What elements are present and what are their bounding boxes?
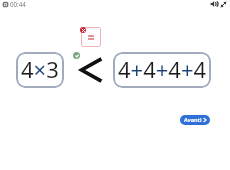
button[interactable] bbox=[81, 27, 101, 47]
staticText: Avanti bbox=[184, 116, 202, 124]
other: Volume bbox=[210, 0, 218, 8]
other: Fullscreen bbox=[220, 1, 227, 8]
staticText: 4+4+4+4 bbox=[118, 54, 207, 84]
button[interactable]: 4+4+4+4 bbox=[113, 52, 211, 88]
staticText: 00:44 bbox=[10, 0, 26, 8]
button[interactable]: Avanti bbox=[180, 115, 210, 125]
staticText: 4×3 bbox=[21, 54, 59, 84]
button[interactable]: 4×3 bbox=[16, 52, 64, 88]
